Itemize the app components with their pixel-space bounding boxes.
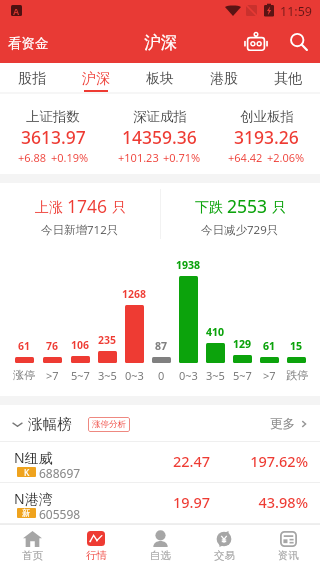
staticText: 3613.97 — [21, 125, 86, 149]
staticText: 资讯 — [278, 549, 299, 562]
staticText: 涨幅榜 — [28, 415, 72, 433]
staticText: 港股 — [210, 70, 238, 88]
staticText: 14359.36 — [122, 125, 197, 149]
staticText: +0.71% — [163, 150, 201, 165]
staticText: 0 — [158, 368, 165, 383]
button[interactable]: 股指 — [0, 63, 64, 94]
staticText: 3~5 — [206, 368, 225, 383]
button[interactable]: 自选 — [128, 524, 192, 569]
button[interactable]: 下跌 — [160, 183, 320, 245]
staticText: 1746 — [67, 194, 108, 218]
staticText: 今日新增712只 — [41, 222, 119, 238]
staticText: N港湾 — [14, 489, 53, 508]
staticText: 43.98% — [248, 492, 308, 512]
staticText: 行情 — [86, 549, 107, 562]
staticText: 深证成指 — [133, 108, 187, 125]
button[interactable]: Search — [286, 29, 310, 53]
staticText: 下跌 — [195, 199, 223, 217]
staticText: 106 — [71, 338, 90, 352]
staticText: 跌停 — [286, 368, 308, 382]
staticText: 沪深 — [82, 70, 110, 88]
staticText: >7 — [46, 368, 59, 383]
button[interactable]: 上证指数 — [0, 94, 106, 174]
button[interactable]: 行情 — [64, 524, 128, 569]
staticText: 自选 — [150, 549, 171, 562]
button[interactable]: N纽威 — [0, 442, 320, 483]
staticText: 235 — [98, 333, 117, 347]
button[interactable]: 更多 — [264, 412, 320, 436]
staticText: 新 — [22, 508, 31, 518]
staticText: 看资金 — [8, 35, 49, 52]
staticText: 19.97 — [120, 492, 210, 512]
staticText: A — [13, 5, 20, 16]
staticText: 只 — [272, 199, 286, 217]
staticText: 0~3 — [179, 368, 198, 383]
staticText: 交易 — [214, 549, 235, 562]
staticText: >7 — [263, 368, 276, 383]
staticText: 首页 — [22, 549, 43, 562]
staticText: 129 — [233, 337, 252, 351]
button[interactable]: 港股 — [192, 63, 256, 94]
staticText: N纽威 — [14, 448, 53, 467]
staticText: 上证指数 — [26, 108, 80, 125]
staticText: 今日减少729只 — [201, 222, 279, 238]
staticText: 87 — [155, 339, 168, 353]
button[interactable]: 涨幅榜 — [0, 411, 136, 437]
staticText: 股指 — [18, 70, 46, 88]
staticText: 76 — [46, 339, 59, 353]
staticText: 涨停分析 — [92, 419, 126, 430]
staticText: +6.88 — [18, 150, 47, 165]
staticText: 0~3 — [125, 368, 144, 383]
staticText: 更多 — [270, 416, 295, 432]
button[interactable]: 上涨 — [0, 183, 160, 245]
staticText: 5~7 — [71, 368, 90, 383]
staticText: 上涨 — [35, 199, 63, 217]
staticText: 创业板指 — [240, 108, 294, 125]
button[interactable]: N港湾 — [0, 483, 320, 524]
button[interactable]: 板块 — [128, 63, 192, 94]
staticText: 11:59 — [280, 3, 312, 20]
staticText: 61 — [263, 339, 276, 353]
staticText: 2553 — [227, 194, 268, 218]
staticText: 605598 — [39, 506, 81, 522]
staticText: 5~7 — [233, 368, 252, 383]
staticText: 15 — [290, 339, 303, 353]
button[interactable]: 其他 — [256, 63, 320, 94]
button[interactable]: 首页 — [0, 524, 64, 569]
staticText: 3193.26 — [234, 125, 299, 149]
button[interactable]: 深证成指 — [106, 94, 213, 174]
button[interactable]: 交易 — [192, 524, 256, 569]
staticText: 22.47 — [120, 451, 210, 471]
staticText: 3~5 — [98, 368, 117, 383]
staticText: 410 — [206, 325, 225, 339]
button[interactable]: 沪深 — [64, 63, 128, 94]
staticText: +101.23 — [118, 150, 159, 165]
staticText: 197.62% — [248, 451, 308, 471]
staticText: 61 — [18, 339, 31, 353]
staticText: 沪深 — [144, 32, 177, 53]
button[interactable]: Robot assistant — [243, 31, 268, 52]
staticText: 只 — [112, 199, 126, 217]
button[interactable]: 看资金 — [0, 27, 55, 56]
staticText: 1268 — [122, 287, 147, 301]
staticText: 涨停 — [13, 368, 35, 382]
staticText: K — [24, 467, 30, 477]
staticText: 1938 — [176, 258, 201, 272]
staticText: +0.19% — [51, 150, 89, 165]
button[interactable]: 资讯 — [256, 524, 320, 569]
button[interactable]: 创业板指 — [213, 94, 320, 174]
staticText: 其他 — [274, 70, 302, 88]
staticText: +2.06% — [267, 150, 305, 165]
staticText: 688697 — [39, 465, 81, 481]
staticText: 板块 — [146, 70, 174, 88]
staticText: +64.42 — [228, 150, 263, 165]
